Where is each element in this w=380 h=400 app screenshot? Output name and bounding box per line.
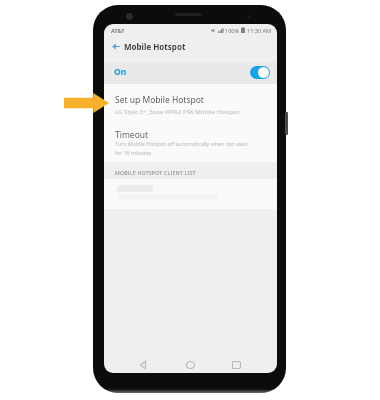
staticText: MOBILE HOTSPOT CLIENT LIST xyxy=(115,169,196,176)
button[interactable]: Navigate up xyxy=(109,39,123,53)
staticText: Mobile Hotspot xyxy=(124,41,186,52)
staticText: Timeout xyxy=(115,129,149,141)
staticText: 100% xyxy=(225,27,240,34)
button[interactable]: Set up Mobile Hotspot xyxy=(104,94,277,106)
staticText: 11:30 AM xyxy=(247,27,271,34)
staticText: LG Stylo 5+_5bae WPA2 PSK Mobile Hotspot xyxy=(115,107,240,115)
staticText: Set up Mobile Hotspot xyxy=(115,94,204,106)
button[interactable]: Timeout xyxy=(104,129,277,146)
button[interactable]: Back xyxy=(131,357,155,373)
staticText: AT&T xyxy=(111,27,125,34)
button[interactable]: Recent apps xyxy=(224,357,248,373)
staticText: Turn Mobile Hotspot off automatically wh… xyxy=(115,140,248,157)
staticText: On xyxy=(114,66,127,78)
button[interactable]: On xyxy=(104,60,277,84)
button[interactable] xyxy=(104,179,277,209)
button[interactable]: Home xyxy=(178,357,202,373)
